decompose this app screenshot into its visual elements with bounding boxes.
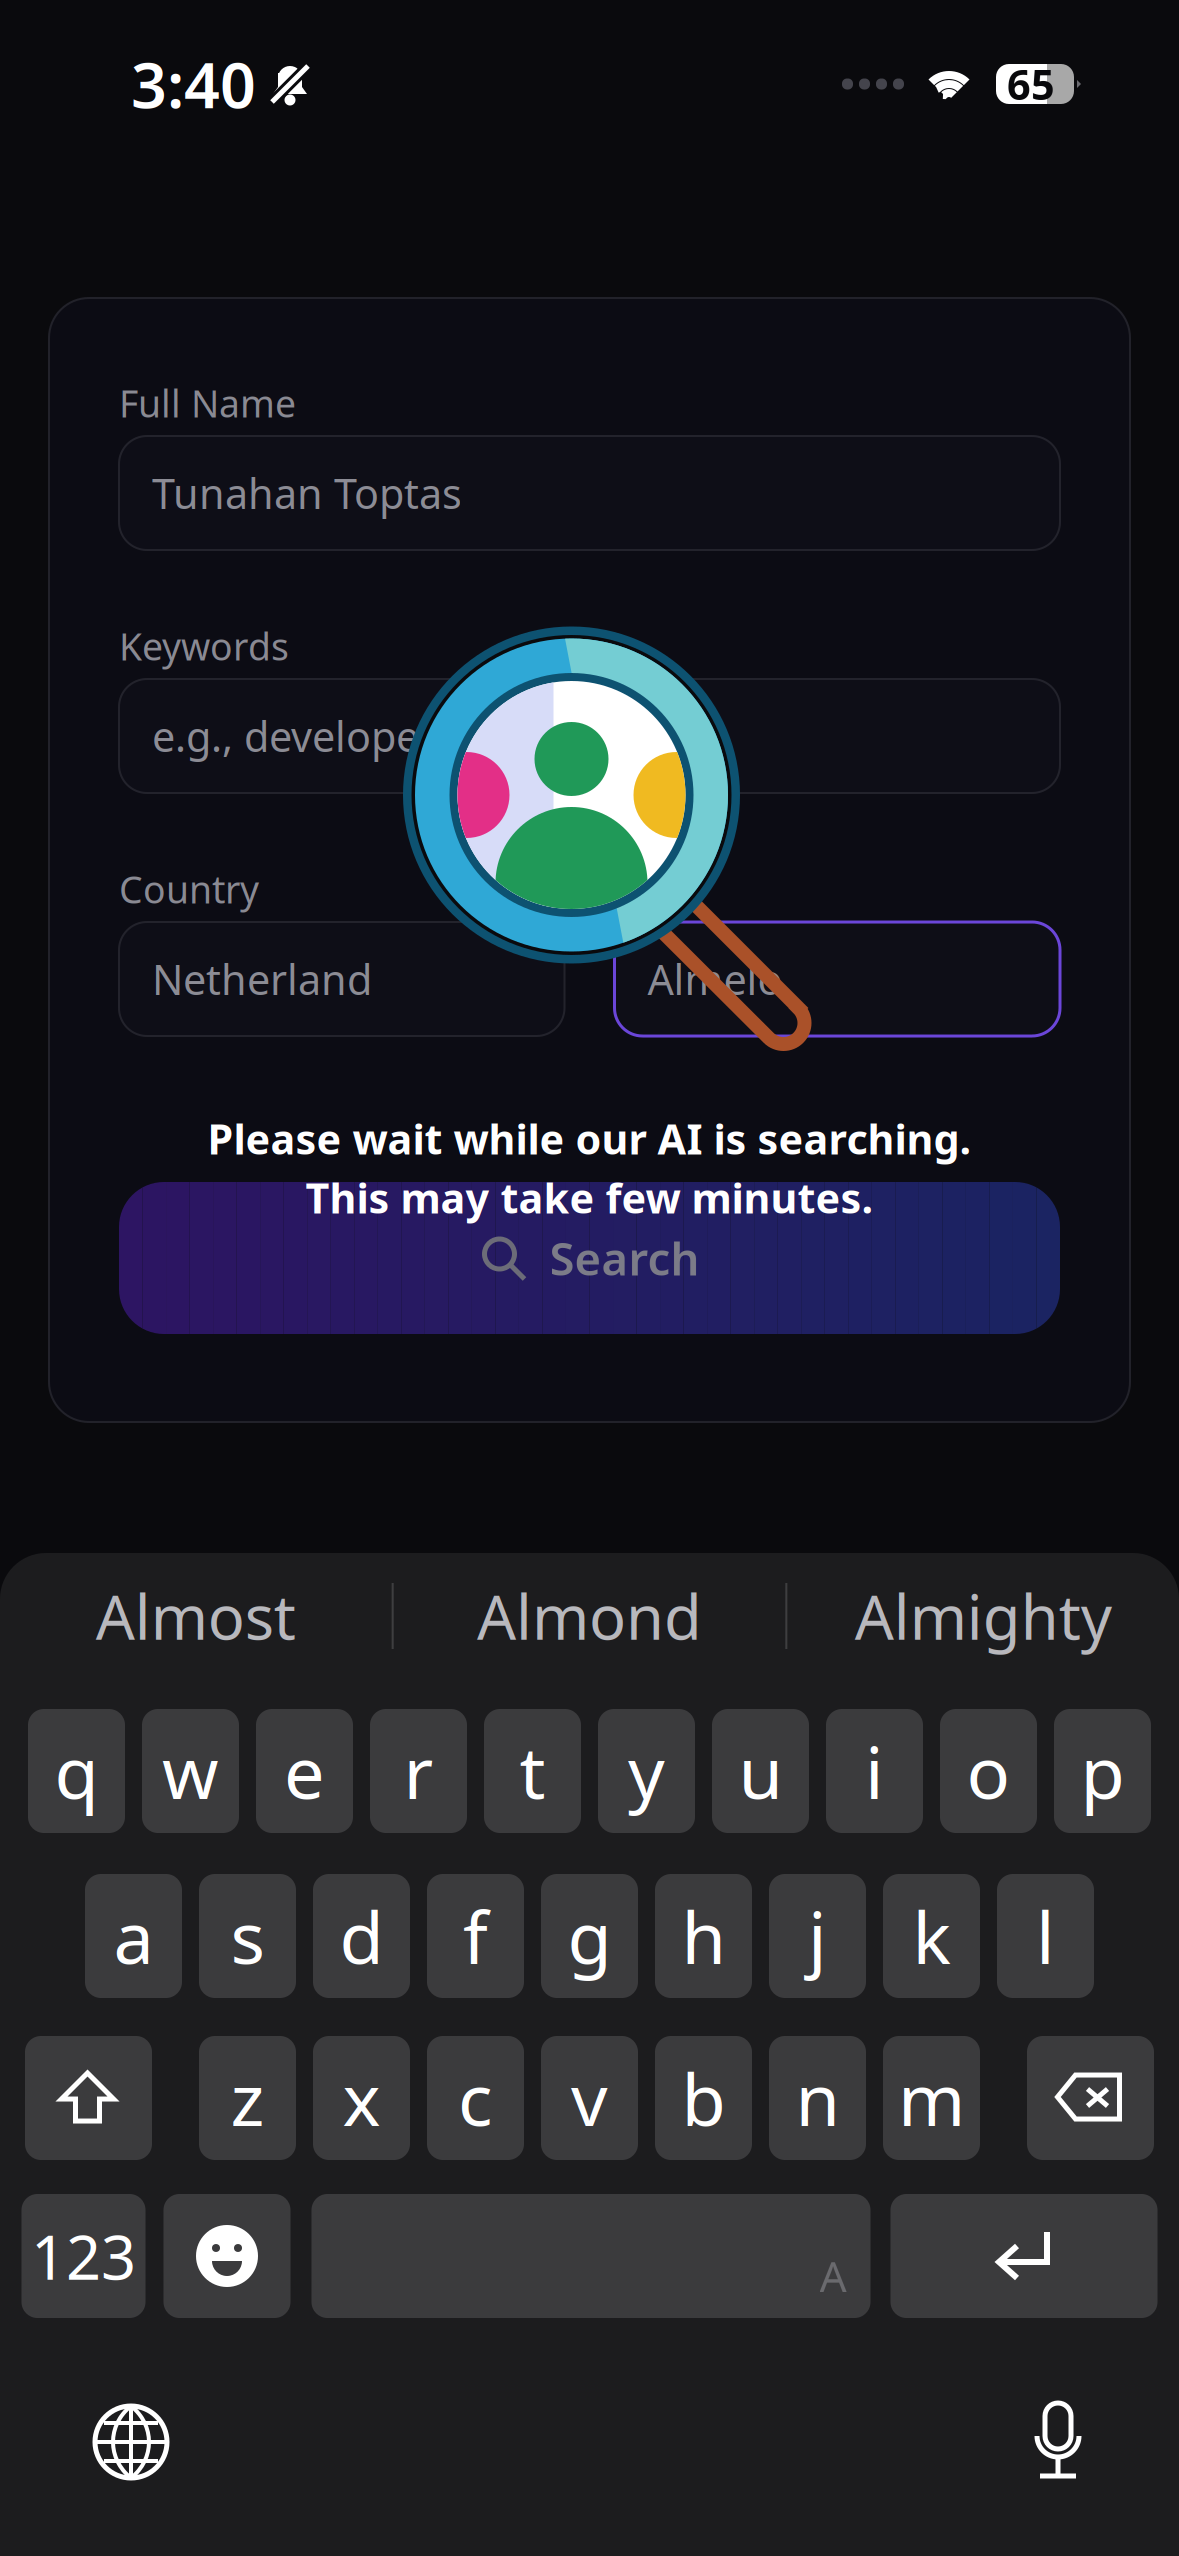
staticText: d — [339, 1888, 383, 1984]
button[interactable]: k — [883, 1874, 980, 1998]
staticText: x — [342, 2050, 380, 2146]
button[interactable]: r — [370, 1709, 467, 1833]
staticText: v — [571, 2050, 608, 2146]
staticText: e.g., developer — [152, 709, 436, 763]
button[interactable]: o — [940, 1709, 1037, 1833]
staticText: z — [230, 2050, 264, 2146]
staticText: j — [808, 1888, 827, 1984]
staticText: h — [681, 1888, 725, 1984]
staticText: u — [738, 1723, 782, 1819]
button[interactable]: i — [826, 1709, 923, 1833]
staticText: k — [912, 1888, 950, 1984]
staticText: Almighty — [855, 1575, 1112, 1657]
button[interactable]: s — [199, 1874, 296, 1998]
staticText: g — [567, 1888, 611, 1984]
button[interactable]: g — [541, 1874, 638, 1998]
staticText: Tunahan Toptas — [152, 466, 462, 520]
staticText: This may take few minutes. — [305, 1170, 873, 1225]
button[interactable]: 123 — [21, 2194, 145, 2318]
staticText: i — [865, 1723, 884, 1819]
staticText: Country — [119, 864, 259, 914]
button[interactable]: Search — [119, 1182, 1060, 1334]
staticText: s — [230, 1888, 264, 1984]
staticText: Almond — [477, 1575, 702, 1657]
button[interactable]: Shift — [25, 2036, 152, 2160]
button[interactable]: w — [142, 1709, 239, 1833]
staticText: Please wait while our AI is searching. — [207, 1111, 971, 1166]
button[interactable]: n — [769, 2036, 866, 2160]
button[interactable]: t — [484, 1709, 581, 1833]
button[interactable]: j — [769, 1874, 866, 1998]
staticText: 123 — [31, 2215, 136, 2297]
button[interactable]: f — [427, 1874, 524, 1998]
staticText: e — [284, 1723, 325, 1819]
staticText: r — [403, 1723, 433, 1819]
staticText: Search — [549, 1228, 699, 1288]
button[interactable]: Almond — [394, 1553, 785, 1679]
button[interactable]: Return — [890, 2194, 1157, 2318]
staticText: f — [463, 1888, 488, 1984]
staticText: p — [1080, 1723, 1124, 1819]
button[interactable]: a — [85, 1874, 182, 1998]
staticText: o — [966, 1723, 1010, 1819]
staticText: A — [819, 2247, 846, 2304]
staticText: 3:40 — [131, 42, 256, 126]
staticText: Almelo — [647, 952, 782, 1006]
staticText: Netherland — [152, 952, 372, 1006]
button[interactable]: c — [427, 2036, 524, 2160]
button[interactable]: Space — [311, 2194, 870, 2318]
staticText: q — [54, 1723, 98, 1819]
staticText: c — [458, 2050, 493, 2146]
button[interactable]: v — [541, 2036, 638, 2160]
staticText: Keywords — [119, 621, 289, 671]
button[interactable]: q — [28, 1709, 125, 1833]
staticText: Almost — [96, 1575, 296, 1657]
button[interactable]: Almost — [0, 1553, 392, 1679]
button[interactable]: b — [655, 2036, 752, 2160]
staticText: 65 — [1007, 57, 1055, 111]
button[interactable]: d — [313, 1874, 410, 1998]
staticText: a — [113, 1888, 153, 1984]
staticText: m — [898, 2050, 965, 2146]
button[interactable]: e — [256, 1709, 353, 1833]
staticText: Full Name — [119, 378, 296, 428]
button[interactable]: Dictate — [1029, 2400, 1087, 2484]
staticText: w — [162, 1723, 219, 1819]
button[interactable]: h — [655, 1874, 752, 1998]
button[interactable]: y — [598, 1709, 695, 1833]
staticText: t — [519, 1723, 545, 1819]
button[interactable]: p — [1054, 1709, 1151, 1833]
button[interactable]: Almighty — [787, 1553, 1179, 1679]
staticText: y — [628, 1723, 665, 1819]
staticText: l — [1036, 1888, 1055, 1984]
button[interactable]: z — [199, 2036, 296, 2160]
button[interactable]: Delete — [1027, 2036, 1154, 2160]
button[interactable]: Change keyboard — [92, 2403, 170, 2481]
button[interactable]: m — [883, 2036, 980, 2160]
staticText: b — [681, 2050, 725, 2146]
button[interactable]: x — [313, 2036, 410, 2160]
button[interactable]: u — [712, 1709, 809, 1833]
button[interactable]: l — [997, 1874, 1094, 1998]
staticText: n — [795, 2050, 839, 2146]
button[interactable]: Emoji — [163, 2194, 290, 2318]
